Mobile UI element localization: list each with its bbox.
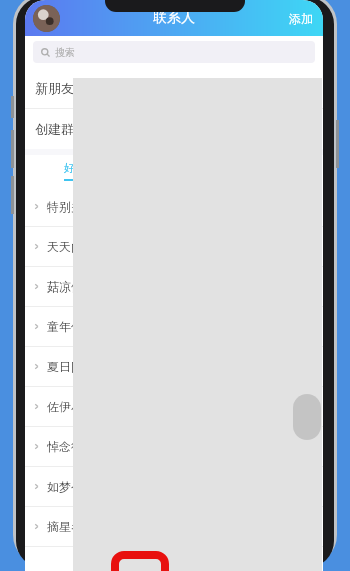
button[interactable]: Profile (33, 5, 60, 32)
staticText: 童年伙伴 (47, 319, 95, 334)
staticText: 12/46 (288, 400, 315, 414)
button[interactable]: 悼念往昔 (25, 427, 323, 466)
staticText: 悼念往昔 (47, 439, 95, 454)
button[interactable]: 天天向上 (25, 227, 323, 266)
staticText: 好友 (64, 161, 86, 175)
button[interactable]: 好友 (25, 155, 125, 187)
button[interactable]: 创建群聊 (25, 109, 323, 149)
staticText: 添加 (289, 11, 313, 26)
button[interactable]: 新朋友 (25, 68, 323, 108)
staticText: 特别关心 (47, 199, 95, 214)
staticText: 佐伊小组 (47, 399, 95, 414)
staticText: 天天向上 (47, 239, 95, 254)
staticText: 夏日同行 (47, 359, 95, 374)
staticText: 菇凉们 (47, 279, 83, 294)
button[interactable]: 搜索 (33, 41, 315, 63)
staticText: 联系人 (153, 9, 195, 27)
button[interactable]: 佐伊小组 (25, 387, 323, 426)
staticText: 如梦令 (47, 479, 83, 494)
button[interactable]: 添加 (279, 11, 323, 26)
button[interactable]: 特别关心 (25, 187, 323, 226)
button[interactable]: 童年伙伴 (25, 307, 323, 346)
staticText: 搜索 (55, 46, 75, 59)
button[interactable]: 摘星者 (25, 507, 323, 546)
staticText: 新朋友 (35, 80, 74, 96)
button[interactable]: 如梦令 (25, 467, 323, 506)
staticText: 创建群聊 (35, 121, 87, 137)
button[interactable]: 菇凉们 (25, 267, 323, 306)
staticText: 摘星者 (47, 519, 83, 534)
button[interactable]: 夏日同行 (25, 347, 323, 386)
